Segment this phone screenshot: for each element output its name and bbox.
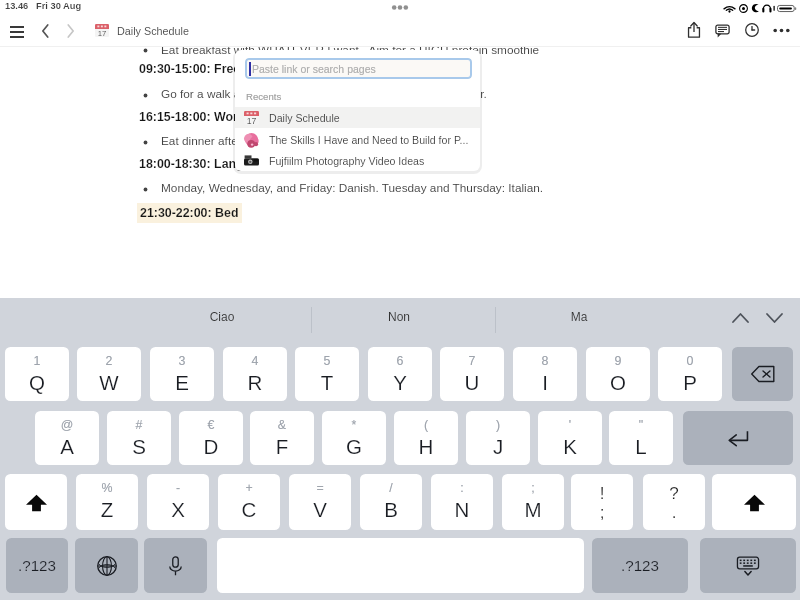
staticText: B [360,498,422,521]
staticText: Z [76,498,138,521]
button[interactable]: Comments [710,18,734,42]
staticText: R [223,371,287,394]
staticText: G [322,435,386,458]
button[interactable]: = [289,474,351,530]
button[interactable]: 6 [368,347,432,401]
staticText: 4 [223,354,287,368]
button[interactable]: : [431,474,493,530]
button[interactable]: € [179,411,243,465]
button[interactable]: 3 [150,347,214,401]
staticText: : [431,481,493,495]
staticText: 0 [658,354,722,368]
staticText: Fujfiilm Photography Video Ideas [269,155,425,167]
button[interactable]: ? [643,474,705,530]
button[interactable]: History [740,18,764,42]
button[interactable]: .?123 [592,538,688,593]
button[interactable]: Previous suggestion [728,306,752,330]
staticText: Daily Schedule [269,112,340,124]
button[interactable]: Paste link or search pages [245,58,472,79]
staticText: P [658,371,722,394]
staticText: 17 [95,29,109,37]
button[interactable]: Menu [4,18,29,43]
staticText: S [107,435,171,458]
button[interactable]: 7 [440,347,504,401]
staticText: F [250,435,314,458]
button[interactable]: Hide keyboard [700,538,796,593]
staticText: V [289,498,351,521]
button[interactable]: Shift [712,474,796,530]
button[interactable]: Non [354,303,444,329]
staticText: Y [368,371,432,394]
button[interactable]: 8 [513,347,577,401]
staticText: I [513,371,577,394]
staticText: C [218,498,280,521]
button[interactable]: + [218,474,280,530]
staticText: Non [354,310,444,323]
button[interactable]: @ [35,411,99,465]
staticText: O [586,371,650,394]
button[interactable]: 2 [77,347,141,401]
button[interactable]: ( [394,411,458,465]
button[interactable]: * [322,411,386,465]
staticText: Daily Schedule [117,25,190,37]
button[interactable]: ) [466,411,530,465]
button[interactable]: % [76,474,138,530]
button[interactable]: 17 [95,23,190,36]
button[interactable]: Backspace [732,347,793,401]
staticText: N [431,498,493,521]
button[interactable]: The Skills I Have and Need to Build for … [235,129,480,150]
staticText: ; [502,481,564,495]
button[interactable]: Ma [534,303,624,329]
button[interactable]: Back [32,18,57,43]
button[interactable]: 1 [5,347,69,401]
staticText: Paste link or search pages [252,63,376,75]
button[interactable]: # [107,411,171,465]
staticText: & [250,418,314,432]
staticText: Eat dinner after work. [161,134,274,147]
button[interactable]: Return [683,411,793,465]
staticText: U [440,371,504,394]
button[interactable]: 5 [295,347,359,401]
staticText: Ma [534,310,624,323]
button[interactable]: - [147,474,209,530]
staticText: Q [5,371,69,394]
button[interactable]: .?123 [6,538,68,593]
staticText: X [147,498,209,521]
staticText: € [179,418,243,432]
staticText: Fri 30 Aug [36,1,82,11]
button[interactable]: 17 [235,107,480,128]
button[interactable]: ! [571,474,633,530]
staticText: A [35,435,99,458]
staticText: The Skills I Have and Need to Build for … [269,134,469,146]
staticText: 9 [586,354,650,368]
button[interactable]: Share [682,18,706,42]
button[interactable]: Ciao [177,303,267,329]
staticText: Monday, Wednesday, and Friday: Danish. T… [161,181,544,194]
button[interactable]: " [609,411,673,465]
staticText: Eat breakfast with WHATEVER I want - Aim… [161,43,540,56]
staticText: 21:30-22:00: Bed [140,206,239,220]
staticText: J [466,435,530,458]
button[interactable]: Fujfiilm Photography Video Ideas [235,150,480,171]
button[interactable]: 9 [586,347,650,401]
staticText: 09:30-15:00: Free Time [139,62,273,76]
staticText: " [609,418,673,432]
button[interactable]: Change keyboard language [75,538,138,593]
button[interactable]: ; [502,474,564,530]
button[interactable]: 0 [658,347,722,401]
button[interactable]: / [360,474,422,530]
button[interactable]: Dictation [144,538,207,593]
staticText: 13.46 [5,1,29,11]
button[interactable]: ' [538,411,602,465]
staticText: K [538,435,602,458]
button[interactable]: Forward [57,18,82,43]
button[interactable]: Shift [5,474,67,530]
staticText: / [360,481,422,495]
staticText: 6 [368,354,432,368]
button[interactable]: 4 [223,347,287,401]
button[interactable]: & [250,411,314,465]
button[interactable]: More options [769,18,793,42]
staticText: 2 [77,354,141,368]
button[interactable]: Next suggestion [762,306,786,330]
